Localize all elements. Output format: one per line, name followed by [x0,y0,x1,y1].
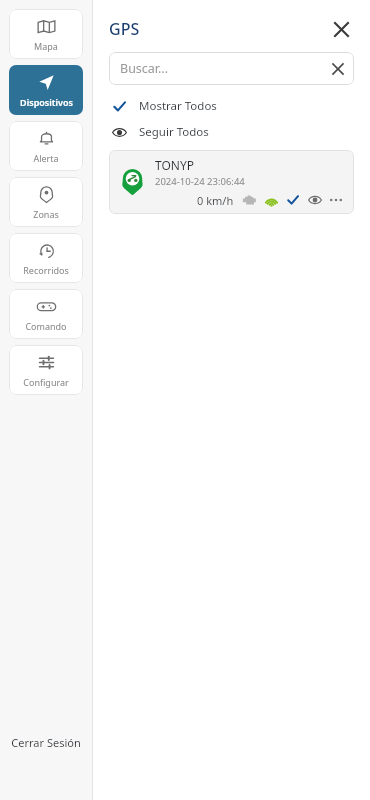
button[interactable]: Recorridos [9,233,83,283]
button[interactable]: Señal [263,192,279,208]
staticText: Zonas [33,208,59,220]
staticText: Cerrar Sesión [11,735,81,750]
button[interactable]: Motor [241,192,257,208]
staticText: GPS [109,18,140,40]
button[interactable]: Dispositivos [9,65,83,115]
staticText: TONYP [155,157,194,173]
staticText: 2024-10-24 23:06:44 [155,175,245,188]
button[interactable]: Seguir Todos [109,121,354,143]
button[interactable]: Mostrar [285,192,301,208]
button[interactable]: Cerrar Sesión [0,735,92,750]
staticText: Mapa [34,40,58,52]
staticText: Seguir Todos [139,124,209,140]
staticText: 0 km/h [197,193,234,208]
button[interactable]: Más opciones [328,192,344,208]
button[interactable]: Buscar... [109,52,354,85]
staticText: Recorridos [23,264,69,276]
button[interactable]: Comando [9,289,83,339]
button[interactable]: TONYP [109,150,354,214]
button[interactable]: Configurar [9,345,83,395]
staticText: Configurar [23,376,69,388]
button[interactable]: Cerrar [328,16,354,42]
button[interactable]: Seguir [307,192,323,208]
button[interactable]: Mapa [9,9,83,59]
staticText: Dispositivos [20,96,73,108]
staticText: Buscar... [120,60,169,77]
staticText: Alerta [33,152,59,164]
button[interactable]: Mostrar Todos [109,95,354,117]
staticText: Comando [25,320,67,332]
staticText: Mostrar Todos [139,98,217,114]
button[interactable]: Zonas [9,177,83,227]
button[interactable]: Alerta [9,121,83,171]
